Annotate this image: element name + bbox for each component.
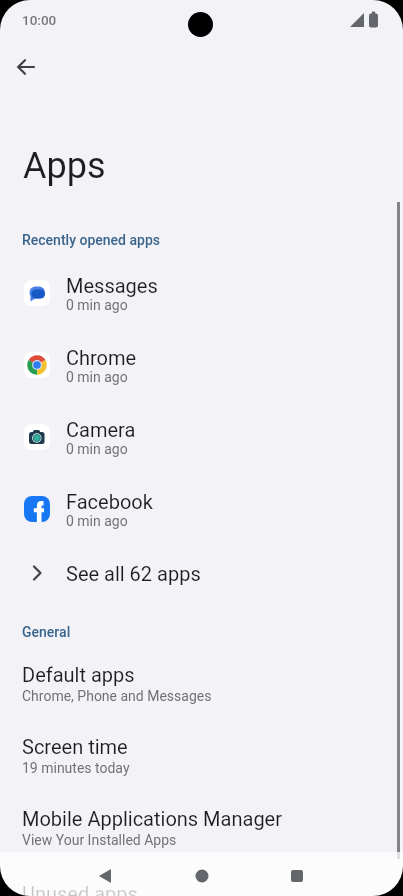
staticText: Messages [66, 274, 158, 297]
button[interactable]: Facebook [0, 473, 403, 545]
button[interactable]: Messages [0, 257, 403, 329]
button[interactable]: Camera [0, 401, 403, 473]
button[interactable]: Screen time [0, 712, 403, 784]
button[interactable]: Mobile Applications Manager [0, 784, 403, 856]
button[interactable]: See all 62 apps [0, 545, 403, 601]
staticText: 0 min ago [66, 441, 128, 457]
staticText: 10:00 [22, 12, 57, 28]
staticText: 0 min ago [66, 297, 128, 313]
staticText: Recently opened apps [22, 232, 161, 248]
staticText: Facebook [66, 490, 153, 513]
staticText: See all 62 apps [66, 562, 201, 585]
staticText: 0 min ago [66, 369, 128, 385]
staticText: Screen time [22, 735, 128, 758]
button[interactable] [273, 852, 321, 896]
staticText: Camera [66, 418, 136, 441]
button[interactable] [0, 55, 48, 103]
staticText: 0 min ago [66, 513, 128, 529]
staticText: Chrome, Phone and Messages [22, 688, 212, 704]
staticText: Mobile Applications Manager [22, 807, 282, 830]
staticText: Default apps [22, 663, 135, 686]
button[interactable] [178, 852, 226, 896]
button[interactable] [81, 852, 129, 896]
staticText: Unused apps [22, 882, 138, 896]
button[interactable]: Default apps [0, 640, 403, 712]
staticText: Chrome [66, 346, 137, 369]
staticText: 19 minutes today [22, 760, 130, 776]
staticText: View Your Installed Apps [22, 832, 177, 848]
staticText: General [22, 624, 71, 640]
staticText: Apps [23, 145, 106, 187]
button[interactable]: Chrome [0, 329, 403, 401]
